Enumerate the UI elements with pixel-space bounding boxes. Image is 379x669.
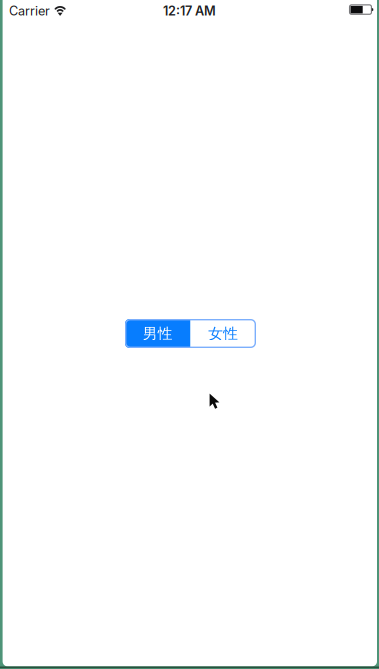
button[interactable]: 男性 [125, 319, 190, 348]
staticText: 男性 [143, 324, 173, 343]
staticText: 女性 [208, 324, 238, 343]
staticText: Carrier [9, 3, 50, 19]
staticText: 12:17 AM [163, 3, 216, 19]
button[interactable]: 女性 [190, 319, 256, 348]
